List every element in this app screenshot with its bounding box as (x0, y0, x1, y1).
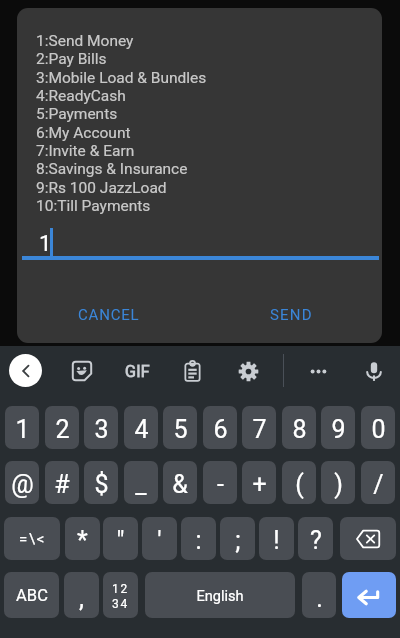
staticText: 0 (371, 415, 386, 444)
staticText: 4:ReadyCash (36, 87, 126, 105)
staticText: ? (310, 526, 322, 555)
staticText: @ (11, 470, 34, 499)
button[interactable]: 8 (282, 406, 316, 449)
button[interactable]: Back (9, 354, 42, 387)
button[interactable]: CANCEL (66, 298, 152, 332)
staticText: # (54, 470, 70, 499)
staticText: 2:Pay Bills (36, 50, 107, 68)
button[interactable]: Clipboard (172, 351, 212, 391)
button[interactable]: $ (84, 461, 118, 504)
button[interactable]: # (45, 461, 79, 504)
button[interactable]: Voice input (354, 351, 394, 391)
button[interactable]: - (203, 461, 237, 504)
staticText: SEND (270, 306, 313, 324)
button[interactable]: SEND (258, 298, 325, 332)
staticText: 5 (173, 415, 188, 444)
staticText: ( (295, 470, 304, 499)
button[interactable]: * (65, 517, 100, 560)
button[interactable]: , (64, 572, 99, 618)
staticText: + (252, 470, 267, 499)
staticText: ABC (16, 586, 48, 605)
staticText: , (79, 584, 84, 613)
button[interactable]: ; (220, 517, 255, 560)
staticText: ! (273, 526, 280, 555)
button[interactable]: 2 (45, 406, 79, 449)
button[interactable]: 9 (321, 406, 355, 449)
button[interactable]: ( (282, 461, 316, 504)
staticText: : (195, 526, 202, 555)
staticText: 10:Till Payments (36, 197, 151, 215)
button[interactable]: _ (124, 461, 158, 504)
staticText: 1 (15, 415, 30, 444)
button[interactable]: ! (259, 517, 294, 560)
staticText: =\< (19, 530, 46, 548)
button[interactable]: 4 (124, 406, 158, 449)
button[interactable]: + (242, 461, 276, 504)
staticText: / (373, 470, 384, 499)
button[interactable]: Backspace (340, 517, 396, 560)
staticText: $ (94, 470, 109, 499)
button[interactable]: / (361, 461, 395, 504)
button[interactable]: 3 (84, 406, 118, 449)
staticText: 7:Invite & Earn (36, 142, 135, 160)
button[interactable]: Stickers (62, 351, 102, 391)
staticText: 9 (331, 415, 346, 444)
button[interactable]: " (103, 517, 138, 560)
staticText: English (196, 587, 244, 604)
staticText: 9:Rs 100 JazzLoad (36, 179, 167, 197)
button[interactable]: =\< (4, 517, 60, 560)
button[interactable]: 6 (203, 406, 237, 449)
button[interactable]: ) (321, 461, 355, 504)
button[interactable]: ? (298, 517, 333, 560)
staticText: 3 (94, 415, 109, 444)
staticText: 4 (134, 415, 149, 444)
button[interactable]: @ (5, 461, 39, 504)
staticText: 6:My Account (36, 124, 131, 142)
staticText: 8:Savings & Insurance (36, 160, 188, 178)
staticText: ; (235, 526, 241, 555)
staticText: 1:Send Money (36, 32, 134, 50)
staticText: GIF (125, 362, 150, 381)
staticText: 8 (292, 415, 307, 444)
button[interactable]: Settings (228, 351, 268, 391)
button[interactable]: ABC (4, 572, 59, 618)
button[interactable]: Numeric keypad (103, 572, 138, 618)
staticText: 5:Payments (36, 105, 118, 123)
staticText: 2 (55, 415, 70, 444)
button[interactable]: English (145, 572, 295, 618)
staticText: 12 (112, 582, 130, 596)
staticText: CANCEL (78, 306, 140, 324)
staticText: 7 (252, 415, 267, 444)
button[interactable]: & (163, 461, 197, 504)
button[interactable]: 7 (242, 406, 276, 449)
button[interactable]: . (302, 572, 336, 618)
staticText: 6 (213, 415, 228, 444)
button[interactable]: : (181, 517, 216, 560)
button[interactable]: 0 (361, 406, 395, 449)
button[interactable]: 1 (5, 406, 39, 449)
button[interactable]: ' (142, 517, 177, 560)
button[interactable]: Enter (342, 572, 396, 618)
staticText: " (116, 526, 125, 555)
staticText: 34 (112, 597, 130, 611)
staticText: - (217, 470, 224, 499)
button[interactable]: GIF (117, 351, 157, 391)
staticText: . (316, 584, 323, 613)
staticText: _ (135, 470, 147, 499)
staticText: ' (157, 526, 162, 555)
staticText: & (172, 470, 188, 499)
button[interactable]: More options (298, 351, 338, 391)
staticText: ) (334, 470, 343, 499)
button[interactable]: 5 (163, 406, 197, 449)
staticText: 3:Mobile Load & Bundles (36, 69, 207, 87)
staticText: 1 (39, 231, 52, 257)
staticText: * (77, 526, 88, 555)
